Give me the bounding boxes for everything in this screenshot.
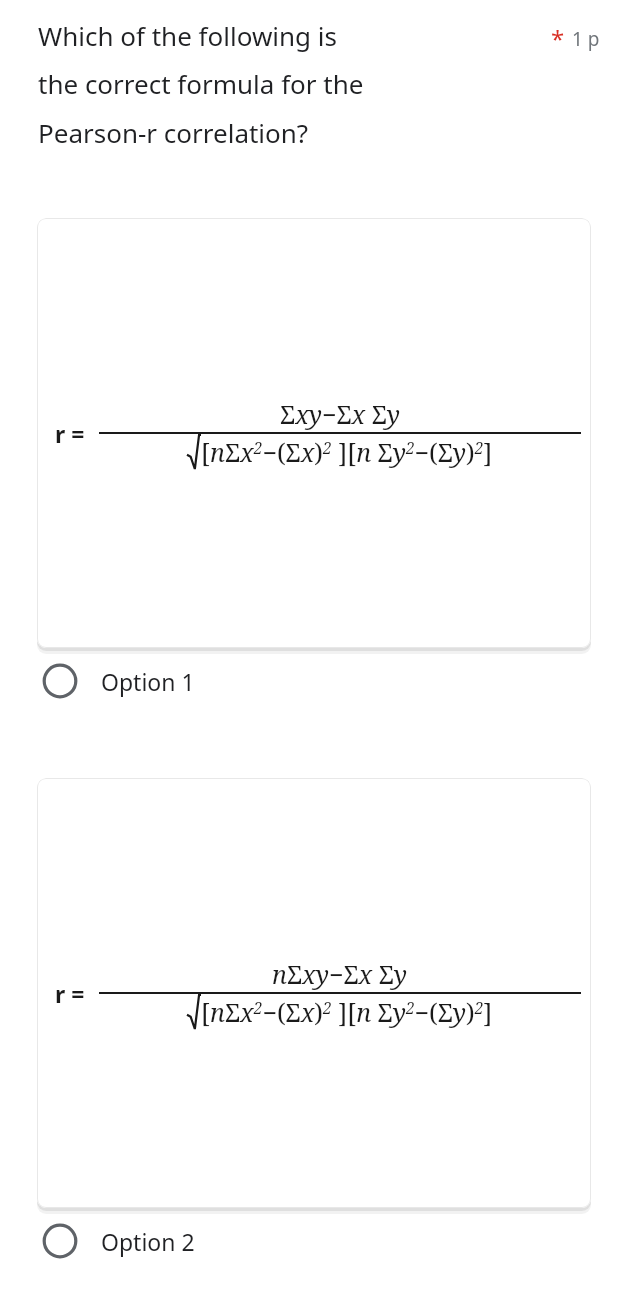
staticText: Option 1 <box>101 666 195 697</box>
staticText: nΣxy−Σx Σy <box>272 957 408 991</box>
staticText: Which of the following is the correct fo… <box>38 18 368 151</box>
staticText: [nΣx2−(Σx)2 ][n Σy2−(Σy)2] <box>201 435 493 469</box>
staticText: * <box>551 22 565 55</box>
button[interactable]: Option 1 <box>37 653 620 709</box>
staticText: Σxy−Σx Σy <box>280 397 401 431</box>
staticText: r = <box>55 418 85 449</box>
staticText: [nΣx2−(Σx)2 ][n Σy2−(Σy)2] <box>201 995 493 1029</box>
staticText: 1 p <box>572 26 600 52</box>
staticText: r = <box>55 978 85 1009</box>
button[interactable]: Option 2 <box>37 1213 620 1269</box>
staticText: Option 2 <box>101 1226 195 1257</box>
